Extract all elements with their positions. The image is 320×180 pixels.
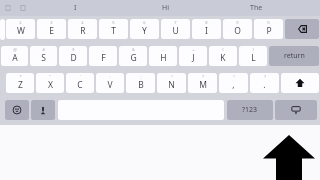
- staticText: 3: [50, 20, 53, 25]
- button[interactable]: Voice input: [31, 100, 55, 120]
- button[interactable]: Settings: [15, 0, 30, 16]
- button[interactable]: Hi: [120, 0, 211, 16]
- staticText: C: [77, 79, 83, 91]
- staticText: ?123: [242, 105, 258, 115]
- staticText: F: [101, 52, 106, 64]
- staticText: 0: [267, 20, 270, 25]
- staticText: !: [233, 74, 235, 79]
- staticText: P: [266, 25, 272, 37]
- button[interactable]: *: [6, 73, 34, 93]
- staticText: _: [102, 47, 104, 52]
- staticText: :: [109, 74, 111, 79]
- staticText: .: [263, 79, 266, 91]
- button[interactable]: I: [30, 0, 120, 16]
- button[interactable]: &: [119, 46, 147, 66]
- button[interactable]: 4: [68, 19, 97, 39]
- button[interactable]: ?: [188, 73, 217, 93]
- staticText: ": [49, 74, 51, 79]
- staticText: !: [171, 74, 173, 79]
- staticText: -: [162, 47, 164, 52]
- staticText: +: [192, 47, 195, 52]
- staticText: return: [284, 51, 305, 61]
- button[interactable]: 5: [99, 19, 128, 39]
- staticText: 7: [174, 20, 177, 25]
- staticText: R: [80, 25, 86, 37]
- staticText: ': [80, 74, 81, 79]
- button[interactable]: Hide keyboard: [275, 100, 317, 120]
- staticText: ): [252, 47, 254, 52]
- staticText: #: [42, 47, 45, 52]
- button[interactable]: 3: [37, 19, 66, 39]
- button[interactable]: Emoji: [5, 100, 29, 120]
- staticText: O: [234, 25, 241, 37]
- button[interactable]: return: [269, 46, 319, 66]
- button[interactable]: 2: [6, 19, 35, 39]
- button[interactable]: The: [211, 0, 302, 16]
- button[interactable]: #: [30, 46, 57, 66]
- button[interactable]: !: [157, 73, 186, 93]
- staticText: 6: [143, 20, 146, 25]
- staticText: J: [192, 52, 195, 64]
- staticText: $: [72, 47, 75, 52]
- button[interactable]: 7: [161, 19, 190, 39]
- staticText: W: [17, 25, 25, 37]
- staticText: H: [160, 52, 167, 64]
- button[interactable]: 6: [130, 19, 159, 39]
- staticText: 5: [112, 20, 115, 25]
- staticText: (: [222, 47, 224, 52]
- button[interactable]: 8: [192, 19, 221, 39]
- staticText: A: [12, 52, 18, 64]
- staticText: 8: [205, 20, 208, 25]
- staticText: V: [107, 79, 113, 91]
- staticText: I: [205, 25, 208, 37]
- staticText: S: [41, 52, 46, 64]
- staticText: ;: [140, 74, 142, 79]
- staticText: D: [70, 52, 77, 64]
- staticText: Y: [142, 25, 147, 37]
- button[interactable]: (: [209, 46, 237, 66]
- staticText: N: [168, 79, 175, 91]
- button[interactable]: +: [179, 46, 207, 66]
- staticText: K: [220, 52, 226, 64]
- staticText: ,: [232, 79, 235, 91]
- button[interactable]: ;: [126, 73, 155, 93]
- staticText: Hi: [162, 3, 169, 13]
- button[interactable]: ': [66, 73, 94, 93]
- staticText: @: [13, 47, 17, 52]
- button[interactable]: !: [219, 73, 248, 93]
- button[interactable]: 9: [223, 19, 252, 39]
- button[interactable]: Backspace: [285, 19, 319, 39]
- button[interactable]: ": [36, 73, 64, 93]
- staticText: X: [48, 79, 53, 91]
- staticText: B: [138, 79, 144, 91]
- staticText: ?: [264, 74, 266, 79]
- staticText: *: [19, 74, 22, 79]
- button[interactable]: Shift: [281, 73, 319, 93]
- button[interactable]: -: [149, 46, 177, 66]
- staticText: &: [132, 47, 135, 52]
- staticText: The: [250, 3, 263, 13]
- staticText: ?: [202, 74, 204, 79]
- button[interactable]: [0, 19, 5, 40]
- button[interactable]: 0: [254, 19, 283, 39]
- button[interactable]: @: [1, 46, 28, 66]
- staticText: 2: [19, 20, 22, 25]
- button[interactable]: ?123: [227, 100, 273, 120]
- button[interactable]: :: [96, 73, 124, 93]
- staticText: Z: [18, 79, 23, 91]
- button[interactable]: Clipboard: [0, 0, 15, 16]
- staticText: G: [130, 52, 137, 64]
- staticText: L: [251, 52, 256, 64]
- button[interactable]: ?: [250, 73, 279, 93]
- staticText: E: [49, 25, 54, 37]
- button[interactable]: $: [59, 46, 87, 66]
- staticText: I: [74, 3, 77, 13]
- staticText: 4: [81, 20, 84, 25]
- button[interactable]: ): [239, 46, 267, 66]
- staticText: M: [199, 79, 207, 91]
- staticText: 9: [236, 20, 239, 25]
- staticText: U: [172, 25, 179, 37]
- staticText: T: [111, 25, 116, 37]
- button[interactable]: _: [89, 46, 117, 66]
